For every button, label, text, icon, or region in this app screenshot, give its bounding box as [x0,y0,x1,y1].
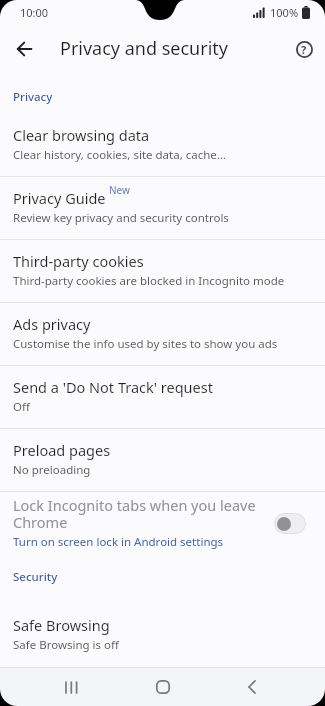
staticText: ? [301,42,307,57]
staticText: 10:00 [20,5,49,20]
staticText: Clear history, cookies, site data, cache… [13,147,226,163]
button[interactable]: Turn on screen lock in Android settings [13,534,224,550]
staticText: Safe Browsing [13,615,110,635]
staticText: Send a 'Do Not Track' request [13,377,213,397]
button[interactable]: Ads privacy [0,303,325,366]
button[interactable]: ? [288,33,320,65]
staticText: New [109,183,130,197]
staticText: Third-party cookies are blocked in Incog… [13,273,285,289]
button[interactable] [274,513,306,534]
staticText: Lock Incognito tabs when you leave Chrom… [13,495,256,532]
button[interactable]: Send a 'Do Not Track' request [0,366,325,429]
staticText: Privacy and security [60,36,228,61]
staticText: Customise the info used by sites to show… [13,336,278,352]
staticText: Ads privacy [13,314,91,334]
staticText: Review key privacy and security controls [13,210,229,226]
button[interactable] [149,673,177,701]
button[interactable]: Clear browsing data [0,114,325,177]
staticText: Privacy [13,89,53,105]
staticText: Security [13,569,58,585]
button[interactable]: Third-party cookies [0,240,325,303]
staticText: Clear browsing data [13,125,150,145]
button[interactable] [238,673,266,701]
staticText: 100% [270,5,299,20]
staticText: Safe Browsing is off [13,637,119,653]
staticText: Preload pages [13,440,111,460]
button[interactable]: Privacy Guide [0,177,325,240]
button[interactable] [8,33,40,65]
button[interactable]: Lock Incognito tabs when you leave Chrom… [0,492,325,560]
button[interactable]: Preload pages [0,429,325,492]
staticText: Off [13,399,30,415]
button[interactable]: Safe Browsing [0,595,325,665]
staticText: No preloading [13,462,91,478]
staticText: Privacy Guide [13,188,106,208]
staticText: Third-party cookies [13,251,144,271]
button[interactable] [57,673,85,701]
